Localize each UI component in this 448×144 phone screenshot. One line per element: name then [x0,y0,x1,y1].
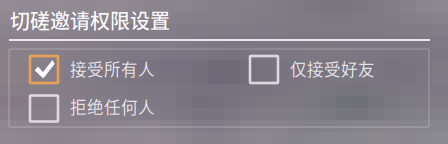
button[interactable]: 拒绝任何人 [30,94,210,121]
button[interactable]: 仅接受好友 [250,56,430,83]
button[interactable]: 接受所有人 [30,56,210,83]
staticText: 拒绝任何人 [70,94,155,118]
staticText: 切磋邀请权限设置 [10,5,170,34]
staticText: 仅接受好友 [290,56,375,80]
staticText: 接受所有人 [70,56,155,80]
